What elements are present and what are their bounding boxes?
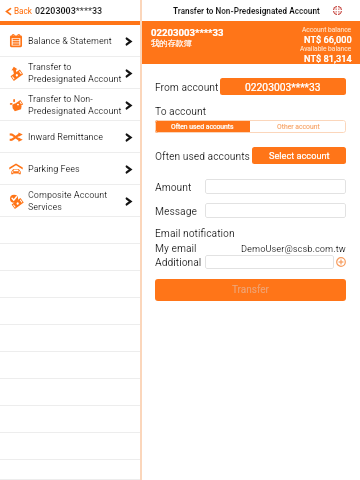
- staticText: My email: [155, 242, 197, 254]
- button[interactable]: Bank logo: [333, 6, 342, 15]
- staticText: To account: [155, 105, 207, 117]
- button[interactable]: Other account: [250, 120, 346, 133]
- staticText: Account balance: [302, 26, 352, 34]
- staticText: 我的存款簿: [151, 38, 192, 48]
- staticText: Transfer to Non-Predesignated Account: [173, 6, 320, 16]
- staticText: NT$ 81,314: [304, 53, 352, 64]
- staticText: Additional: [155, 256, 205, 268]
- button[interactable]: Transfer to Predesignated Account: [0, 57, 140, 89]
- staticText: From account: [155, 81, 219, 93]
- button[interactable]: [205, 203, 346, 218]
- staticText: Available balance: [300, 45, 352, 53]
- staticText: Transfer to Predesignated Account: [28, 62, 124, 84]
- staticText: Back: [14, 6, 32, 16]
- staticText: 02203003****33: [151, 27, 224, 38]
- button[interactable]: [205, 179, 346, 194]
- staticText: 02203003****33: [35, 6, 103, 16]
- staticText: Email notification: [155, 227, 235, 239]
- staticText: 02203003****33: [245, 81, 321, 93]
- staticText: Inward Remittance: [28, 132, 124, 143]
- staticText: Message: [155, 205, 205, 217]
- staticText: Often used accounts: [155, 150, 250, 162]
- button[interactable]: Transfer: [155, 279, 346, 301]
- button[interactable]: Often used accounts: [155, 120, 250, 133]
- staticText: Transfer to Non- Predesignated Account: [28, 94, 124, 116]
- button[interactable]: 02203003****33: [220, 78, 346, 95]
- button[interactable]: Back: [0, 3, 35, 19]
- button[interactable]: Balance & Statement: [0, 25, 140, 57]
- button[interactable]: Transfer to Non- Predesignated Account: [0, 89, 140, 121]
- button[interactable]: Add email address: [336, 257, 346, 267]
- staticText: Composite Account Services: [28, 190, 124, 212]
- staticText: DemoUser@scsb.com.tw: [241, 243, 346, 254]
- staticText: Select account: [269, 150, 330, 161]
- staticText: Other account: [277, 123, 320, 131]
- staticText: Balance & Statement: [28, 36, 124, 47]
- button[interactable]: Composite Account Services: [0, 185, 140, 217]
- staticText: Transfer: [232, 284, 269, 296]
- button[interactable]: [205, 255, 334, 269]
- button[interactable]: Select account: [252, 147, 346, 164]
- staticText: NT$ 66,000: [304, 34, 352, 45]
- staticText: Parking Fees: [28, 164, 124, 175]
- button[interactable]: Inward Remittance: [0, 121, 140, 153]
- staticText: Often used accounts: [171, 123, 234, 131]
- staticText: Amount: [155, 181, 205, 193]
- button[interactable]: Parking Fees: [0, 153, 140, 185]
